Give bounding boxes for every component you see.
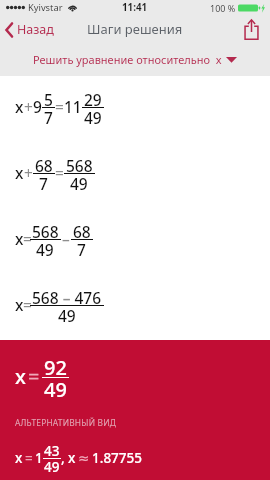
staticText: 9 <box>33 96 42 117</box>
button[interactable]: x <box>0 208 270 274</box>
staticText: + <box>24 96 33 117</box>
button[interactable]: x <box>0 76 270 142</box>
staticText: + <box>24 162 33 183</box>
staticText: x <box>15 96 24 117</box>
staticText: , <box>61 449 65 467</box>
staticText: = <box>28 363 40 390</box>
staticText: Kyivstar <box>28 1 63 14</box>
button[interactable]: x <box>0 142 270 208</box>
staticText: = <box>55 162 64 183</box>
staticText: 7 <box>77 239 86 260</box>
staticText: x <box>15 449 23 467</box>
staticText: 43 <box>44 442 60 460</box>
button[interactable]: x <box>0 274 270 340</box>
staticText: = <box>23 294 32 315</box>
staticText: x <box>15 363 26 390</box>
staticText: = <box>23 228 32 249</box>
button[interactable]: x <box>0 340 270 480</box>
staticText: 68 <box>73 221 91 242</box>
staticText: 1.87755 <box>92 449 143 467</box>
staticText: 92 <box>44 354 67 381</box>
staticText: 100 % <box>210 2 236 14</box>
staticText: 568 <box>66 155 93 176</box>
staticText: 11:41 <box>122 1 148 14</box>
staticText: Назад <box>17 21 54 38</box>
staticText: x <box>68 449 76 467</box>
staticText: 49 <box>70 173 88 194</box>
staticText: ≈ <box>78 450 90 466</box>
staticText: 11 <box>64 96 82 117</box>
staticText: 7 <box>39 173 48 194</box>
staticText: 7 <box>44 107 53 128</box>
staticText: 49 <box>44 458 60 476</box>
staticText: 568 – 476 <box>32 287 102 308</box>
staticText: 568 <box>32 221 59 242</box>
staticText: x <box>15 162 24 183</box>
staticText: = <box>55 96 64 117</box>
staticText: 49 <box>84 107 102 128</box>
staticText: = <box>25 449 33 467</box>
staticText: 29 <box>84 89 102 110</box>
staticText: Решить уравнение относительно x <box>33 52 222 67</box>
button[interactable]: Share <box>235 19 270 40</box>
button[interactable]: Назад <box>0 21 62 38</box>
staticText: x <box>15 294 24 315</box>
staticText: 1 <box>35 449 43 467</box>
button[interactable]: Решить уравнение относительно x <box>0 43 270 76</box>
staticText: x <box>15 228 24 249</box>
staticText: 68 <box>35 155 53 176</box>
staticText: АЛЬТЕРНАТИВНЫЙ ВИД <box>15 417 117 428</box>
staticText: – <box>62 228 70 249</box>
staticText: 49 <box>58 305 76 326</box>
staticText: 49 <box>44 376 67 403</box>
staticText: 49 <box>36 239 54 260</box>
staticText: Шаги решения <box>87 20 183 38</box>
staticText: 5 <box>44 89 53 110</box>
